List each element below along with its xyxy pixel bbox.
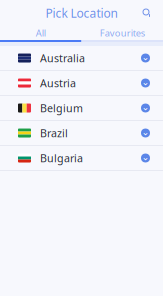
button[interactable]: Australia xyxy=(0,46,163,71)
button[interactable]: Search xyxy=(139,5,155,21)
staticText: All xyxy=(36,27,46,39)
button[interactable]: Brazil xyxy=(0,121,163,146)
staticText: Austria xyxy=(40,76,76,90)
button[interactable]: All xyxy=(0,26,81,40)
staticText: ⌄ xyxy=(141,102,149,112)
staticText: ⌄ xyxy=(141,152,149,162)
staticText: ⌄ xyxy=(141,127,149,137)
staticText: Belgium xyxy=(40,101,83,115)
button[interactable]: Austria xyxy=(0,71,163,96)
staticText: ⌄ xyxy=(141,52,149,62)
staticText: ⌄ xyxy=(141,77,149,87)
staticText: Favourites xyxy=(100,27,145,39)
button[interactable]: Favourites xyxy=(81,26,163,40)
staticText: Brazil xyxy=(40,126,68,140)
staticText: Pick Location xyxy=(45,5,117,21)
staticText: Bulgaria xyxy=(40,151,83,165)
button[interactable]: Belgium xyxy=(0,96,163,121)
staticText: Australia xyxy=(40,51,85,65)
button[interactable]: Bulgaria xyxy=(0,146,163,171)
